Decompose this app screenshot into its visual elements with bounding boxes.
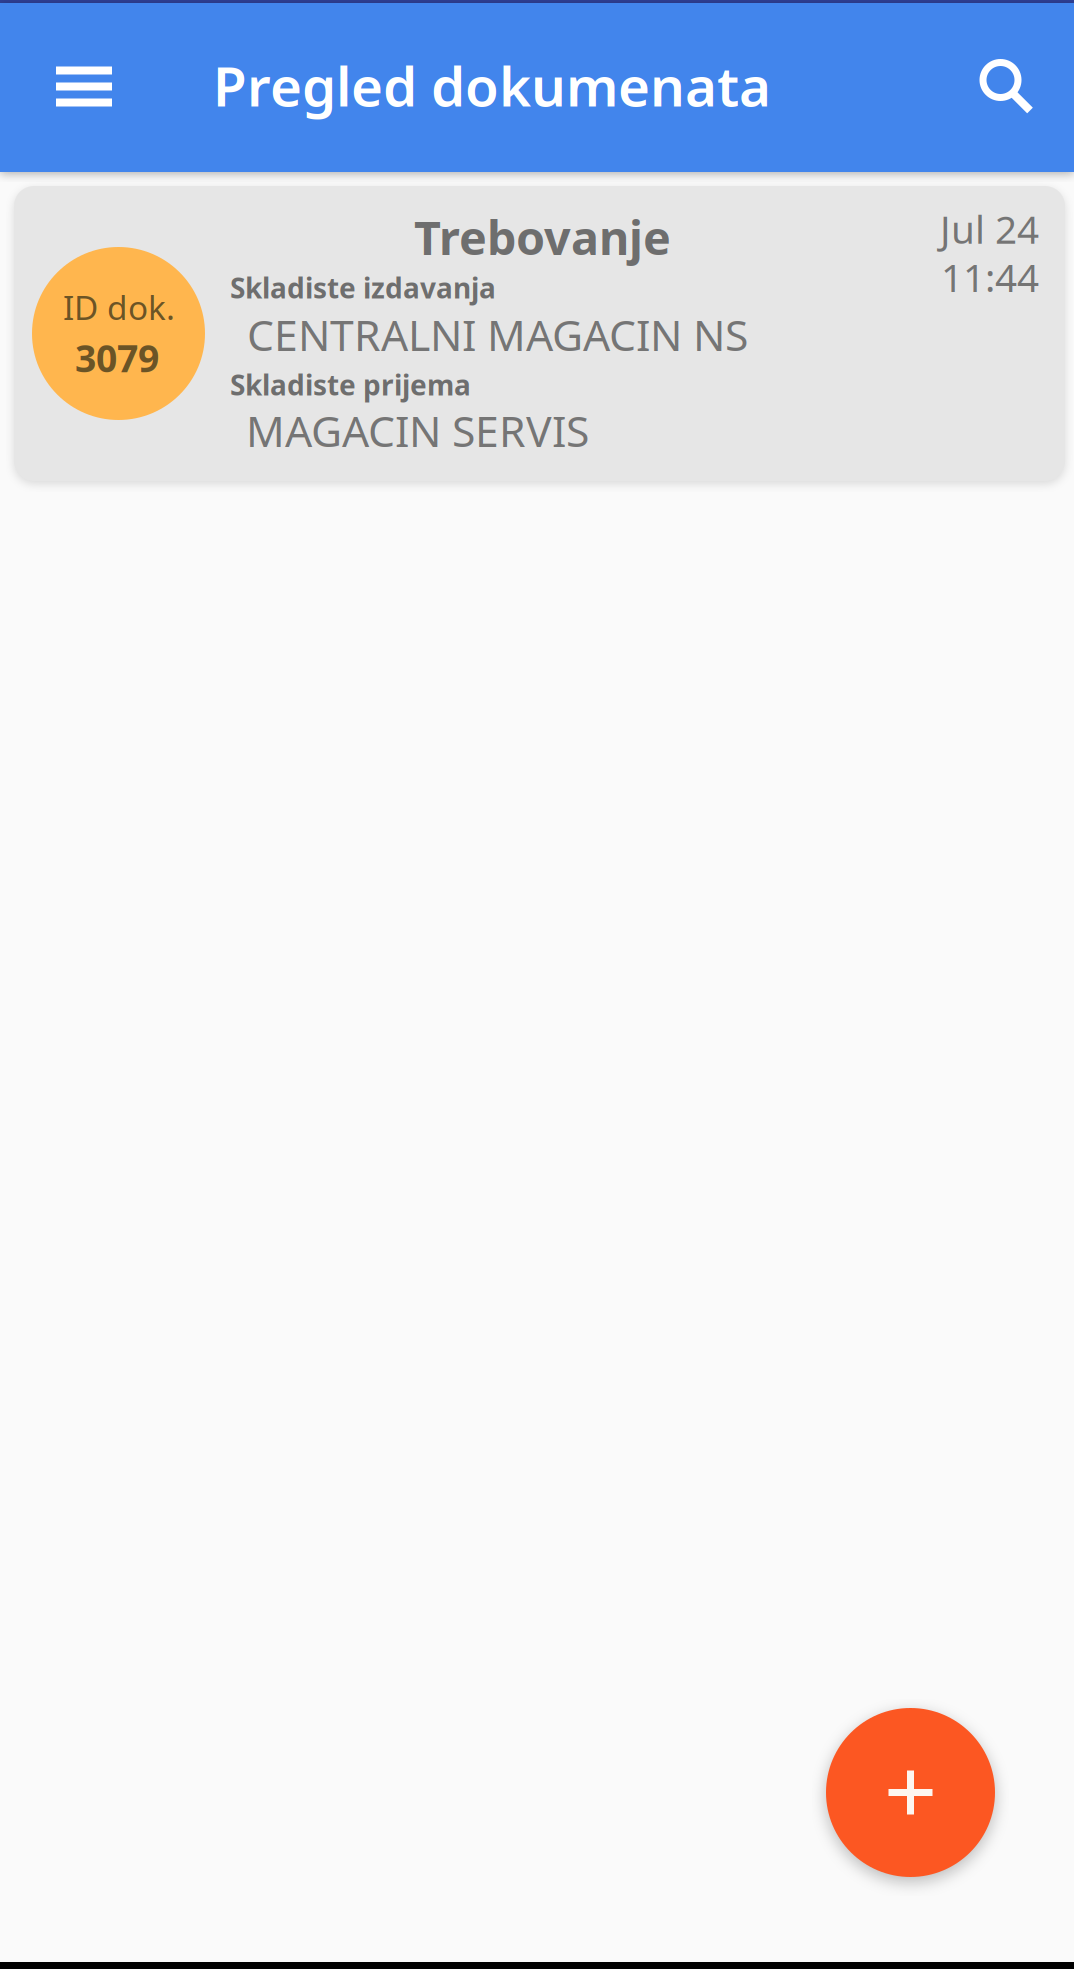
staticText: Jul 24: [940, 203, 1039, 254]
button[interactable]: Add document: [826, 1708, 995, 1877]
staticText: 3079: [75, 333, 159, 383]
button[interactable]: ID dok.: [14, 186, 1065, 481]
staticText: CENTRALNI MAGACIN NS: [247, 306, 748, 363]
staticText: Pregled dokumenata: [213, 49, 771, 122]
button[interactable]: Search: [952, 3, 1064, 172]
staticText: Trebovanje: [414, 206, 671, 268]
staticText: 11:44: [941, 251, 1039, 303]
button[interactable]: Menu: [28, 2, 140, 171]
staticText: Skladiste izdavanja: [230, 269, 496, 306]
staticText: ID dok.: [63, 285, 175, 329]
staticText: Skladiste prijema: [230, 366, 471, 403]
staticText: MAGACIN SERVIS: [246, 402, 589, 459]
